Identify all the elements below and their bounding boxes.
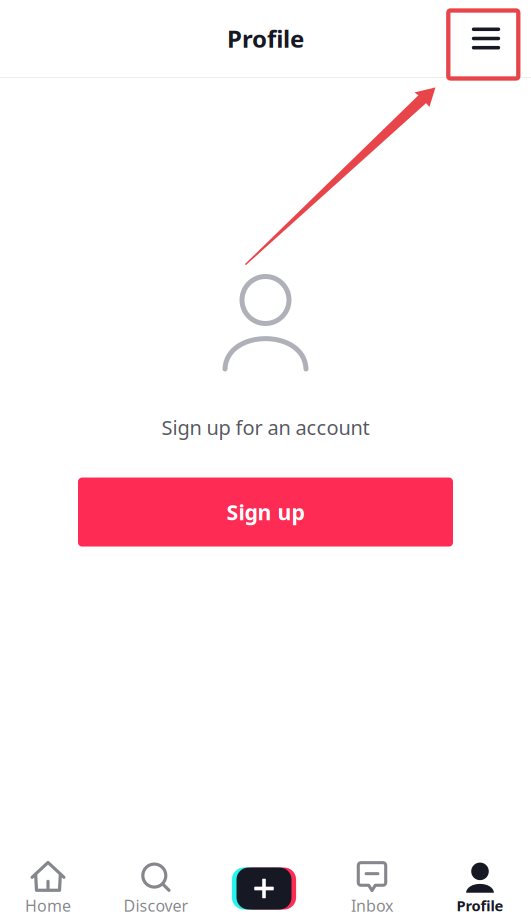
staticText: Sign up for an account	[161, 414, 369, 441]
staticText: Profile	[227, 23, 304, 54]
button[interactable]: Inbox	[318, 857, 426, 919]
button[interactable]: Profile	[426, 857, 531, 919]
button[interactable]: Discover	[102, 857, 210, 919]
button[interactable]: Create	[210, 857, 318, 919]
staticText: Discover	[123, 895, 188, 916]
button[interactable]: Sign up	[78, 478, 453, 547]
staticText: Profile	[456, 896, 503, 915]
staticText: Home	[25, 895, 71, 916]
staticText: Inbox	[351, 895, 393, 916]
button[interactable]: Menu	[455, 7, 517, 69]
staticText: Sign up	[226, 498, 304, 526]
button[interactable]: Home	[0, 857, 102, 919]
